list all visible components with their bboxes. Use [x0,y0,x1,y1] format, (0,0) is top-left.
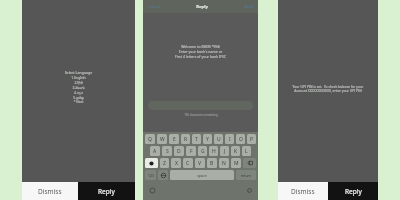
staticText: O [239,136,243,143]
staticText: 4.ಕನ್ನಡ [22,90,135,95]
staticText: B [210,160,214,167]
staticText: space [197,173,207,178]
button[interactable]: V [195,158,205,168]
button[interactable]: space [170,170,234,180]
button[interactable]: H [209,146,218,156]
button[interactable]: Shift [145,158,158,168]
button[interactable]: E [169,134,179,144]
staticText: Dismiss [38,187,62,196]
staticText: 3.తెలుగు [22,85,135,90]
staticText: 1.English [22,75,135,80]
button[interactable]: W [157,134,167,144]
button[interactable]: S [162,146,172,156]
button[interactable]: Switch keyboard [158,170,168,180]
staticText: M [234,160,239,167]
button[interactable]: F [186,146,196,156]
staticText: U [217,136,221,143]
staticText: C [186,160,190,167]
staticText: 5.தமிழ் [22,95,135,100]
button[interactable]: C [183,158,193,168]
staticText: 123 [148,173,154,178]
staticText: Reply [98,187,115,196]
button[interactable]: return [236,170,256,180]
staticText: Select Language [22,70,135,75]
staticText: A [153,148,157,155]
staticText: Send [244,4,253,9]
staticText: Reply [345,187,362,196]
button[interactable]: D [174,146,184,156]
staticText: Z [163,160,166,167]
button[interactable]: X [171,158,181,168]
button[interactable]: Q [145,134,155,144]
button[interactable]: Cancel [148,4,160,9]
button[interactable]: U [214,134,223,144]
button[interactable]: Dismiss [278,182,328,200]
button[interactable]: 123 [145,170,156,180]
button[interactable]: G [198,146,207,156]
button[interactable]: Microphone [246,187,252,193]
staticText: T [195,136,198,143]
staticText: P [250,136,254,143]
button[interactable]: J [220,146,229,156]
button[interactable]: N [219,158,229,168]
staticText: K [234,148,238,155]
staticText: D [177,148,181,155]
staticText: Welcome to BHIM *99# [143,44,258,49]
staticText: I [229,136,231,143]
staticText: V [198,160,202,167]
button[interactable]: Emoji [149,187,155,193]
staticText: Your UPI PIN is set. To check balance fo… [282,84,374,88]
button[interactable]: Dismiss [22,182,78,200]
button[interactable]: L [242,146,251,156]
staticText: First 4 letters of your bank IFSC [143,54,258,59]
staticText: Dismiss [291,187,315,196]
button[interactable]: Reply [328,182,378,200]
button[interactable]: I [225,134,234,144]
staticText: Reply [196,4,208,10]
staticText: Q [148,136,152,143]
button[interactable]: Send [244,4,253,9]
button[interactable]: T [192,134,201,144]
button[interactable]: M [231,158,241,168]
button[interactable]: A [150,146,160,156]
button[interactable]: Y [203,134,212,144]
button[interactable]: Backspace [243,158,256,168]
button[interactable]: R [181,134,190,144]
staticText: E [173,136,176,143]
staticText: Enter your bank's name or [143,49,258,54]
button[interactable]: Reply [78,182,135,200]
staticText: S [166,148,169,155]
staticText: 2.हिंदी [22,80,135,85]
staticText: L [245,148,248,155]
staticText: G [201,148,205,155]
staticText: J [224,148,226,155]
staticText: Y [206,136,209,143]
staticText: * Next [22,100,135,104]
staticText: return [241,173,252,178]
staticText: R [184,136,188,143]
staticText: X [175,160,178,167]
button[interactable]: K [231,146,240,156]
button[interactable]: P [247,134,256,144]
button[interactable]: O [236,134,245,144]
button[interactable]: B [207,158,217,168]
staticText: W [160,136,165,143]
staticText: F [190,148,193,155]
button[interactable]: Z [160,158,169,168]
staticText: Account XXXXXXXXXX00, enter your UPI PIN [282,88,374,92]
staticText: N [222,160,226,167]
staticText: H [212,148,216,155]
staticText: 160 characters remaining [184,113,218,117]
staticText: Cancel [148,4,160,9]
